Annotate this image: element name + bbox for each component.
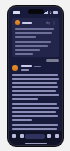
button[interactable] xyxy=(12,65,59,131)
button[interactable]: Reply xyxy=(46,21,50,25)
button[interactable]: Archive xyxy=(12,134,16,138)
button[interactable]: Reply xyxy=(47,134,51,138)
button[interactable]: More options xyxy=(52,21,56,25)
button[interactable] xyxy=(46,59,59,62)
button[interactable]: Reply xyxy=(12,18,59,57)
button[interactable] xyxy=(25,134,45,139)
button[interactable]: Delete xyxy=(20,134,24,138)
button[interactable]: Forward xyxy=(55,134,59,138)
